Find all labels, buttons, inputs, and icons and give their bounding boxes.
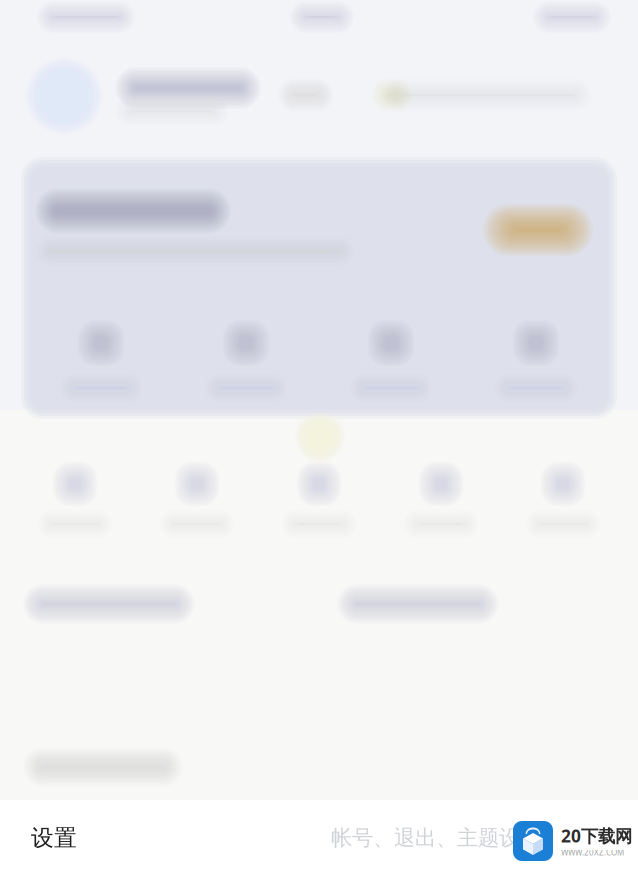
button[interactable]: Profile photo — [21, 53, 107, 139]
button[interactable] — [0, 0, 638, 800]
button[interactable] — [0, 0, 638, 800]
button[interactable] — [0, 0, 638, 800]
staticText: WWW.20XZ.COM — [561, 847, 624, 858]
button[interactable] — [0, 0, 638, 800]
staticText: 20下载网 — [561, 824, 632, 847]
button[interactable] — [0, 0, 638, 800]
button[interactable] — [0, 0, 638, 800]
button[interactable] — [0, 0, 638, 800]
button[interactable] — [0, 0, 638, 800]
button[interactable] — [0, 0, 638, 800]
button[interactable] — [0, 0, 638, 800]
button[interactable] — [0, 0, 638, 800]
button[interactable] — [0, 0, 638, 800]
button[interactable] — [0, 0, 638, 800]
button[interactable] — [0, 0, 638, 800]
staticText: 帐号、退出、主题设置 — [331, 825, 541, 851]
button[interactable] — [0, 0, 638, 800]
button[interactable] — [0, 0, 638, 800]
staticText: 设置 — [31, 824, 77, 852]
